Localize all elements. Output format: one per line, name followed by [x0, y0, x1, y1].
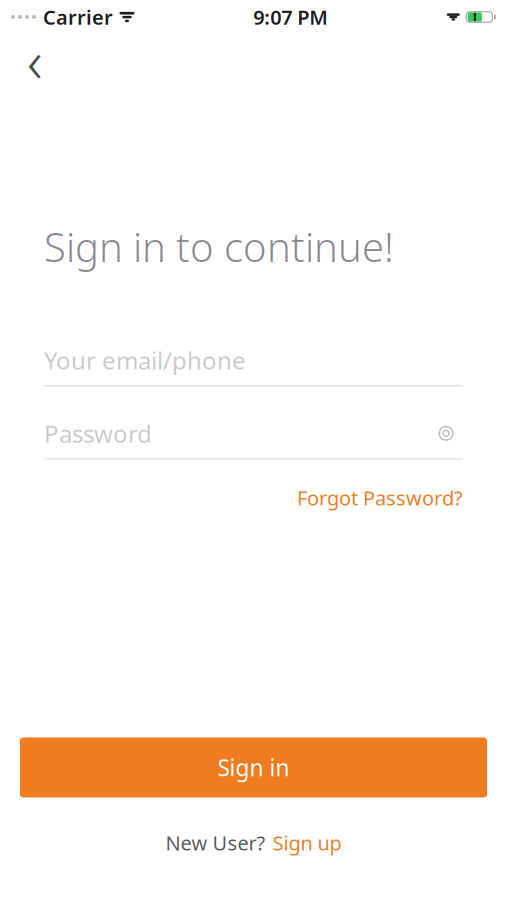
staticText: New User? — [165, 829, 265, 856]
staticText: Sign in to continue! — [44, 220, 394, 273]
staticText: Carrier — [43, 4, 113, 30]
staticText: Forgot Password? — [297, 484, 463, 511]
button[interactable]: Show password — [429, 419, 463, 447]
staticText: ‹ — [27, 21, 43, 99]
button[interactable]: Sign up — [272, 825, 341, 860]
staticText: Sign in — [217, 752, 289, 782]
button[interactable]: Forgot Password? — [297, 479, 463, 516]
button[interactable]: Back — [12, 37, 58, 83]
staticText: Sign up — [272, 829, 341, 856]
staticText: Password — [44, 417, 152, 449]
staticText: Your email/phone — [44, 344, 246, 376]
staticText: 9:07 PM — [253, 4, 328, 30]
button[interactable]: Sign in — [20, 737, 487, 797]
